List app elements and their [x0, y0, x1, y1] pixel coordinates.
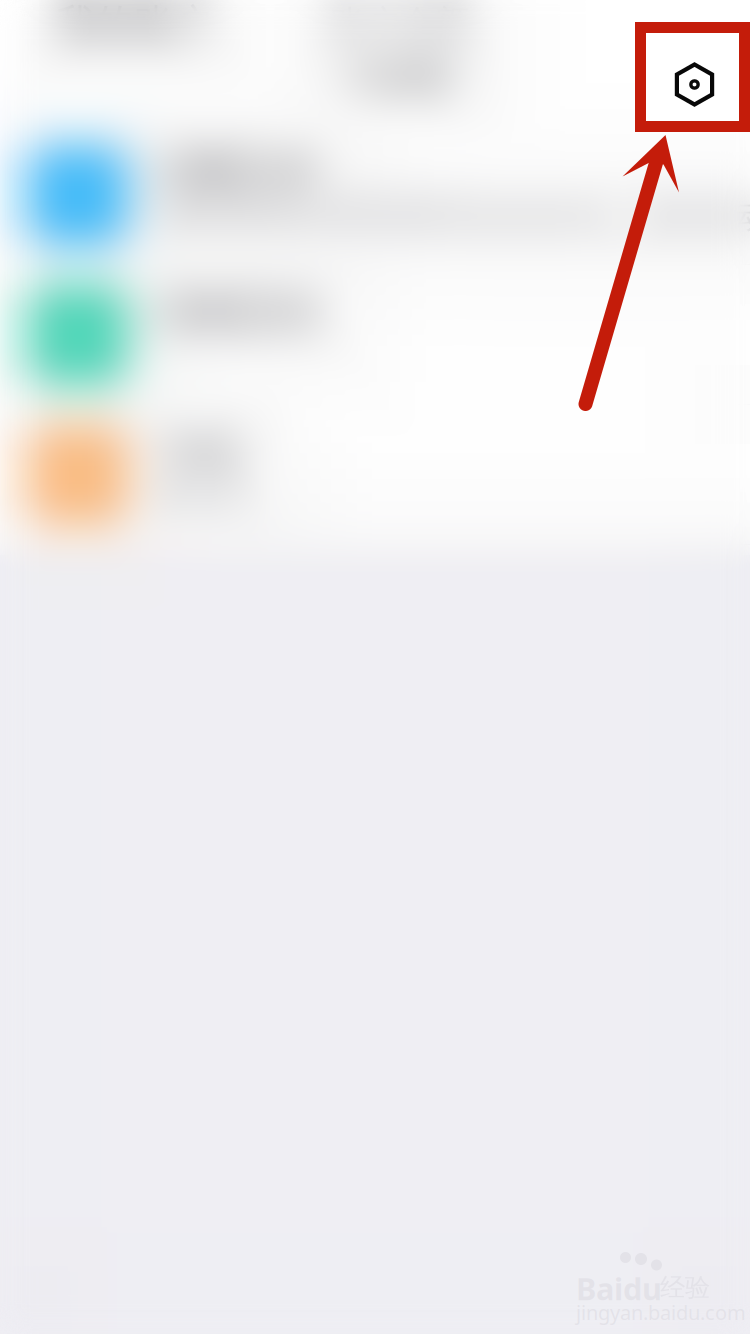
staticText: 经验: [660, 1272, 710, 1303]
button[interactable]: 优惠活动: [0, 0, 750, 1334]
staticText: 银行卡: [160, 477, 256, 516]
staticText: 消费记录: [158, 147, 318, 196]
staticText: 查看最近的消费明细与账单信息，余额变动记录一目了然: [160, 197, 750, 236]
staticText: 优惠活动: [158, 287, 318, 336]
button[interactable]: 消费记录: [0, 0, 750, 1334]
staticText: ￥0.00: [340, 52, 449, 100]
button[interactable]: Settings: [635, 22, 750, 132]
button[interactable]: 卡包: [0, 0, 750, 1334]
staticText: 我的账户: [56, 0, 212, 47]
staticText: jingyan.baidu.com: [576, 1299, 746, 1326]
staticText: Baidu: [576, 1268, 662, 1309]
staticText: 卡包: [158, 427, 238, 476]
